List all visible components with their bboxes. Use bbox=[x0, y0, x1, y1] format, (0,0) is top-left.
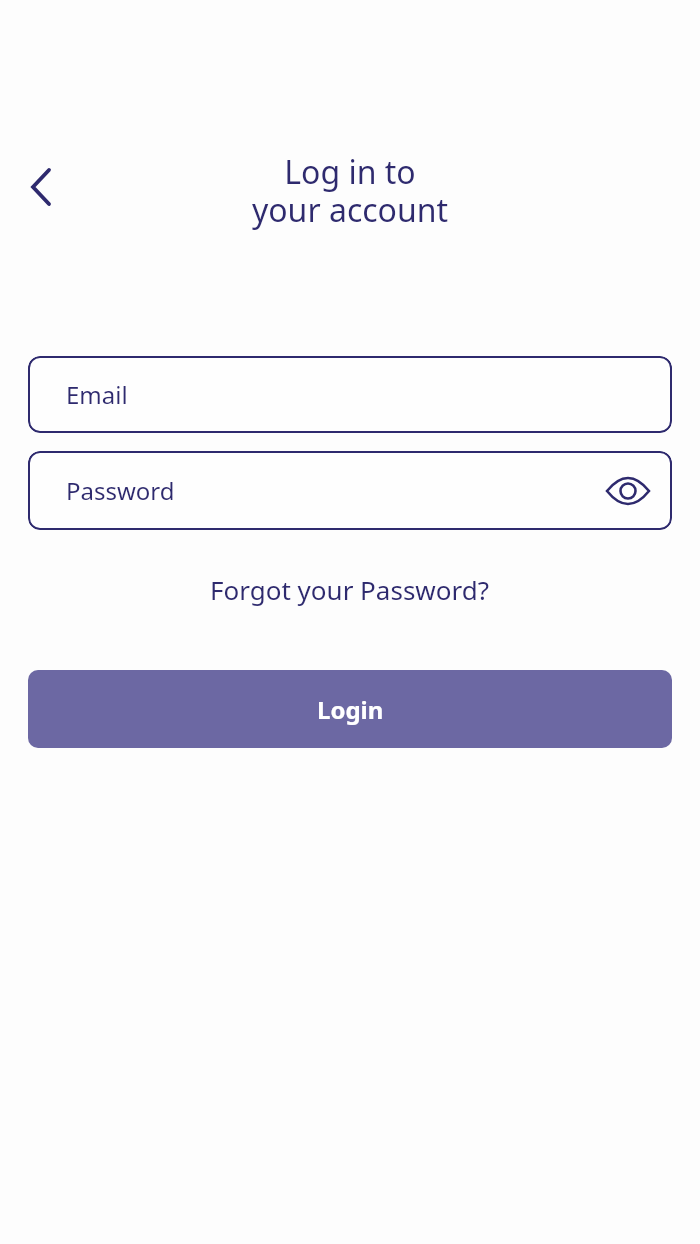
button[interactable]: Forgot your Password? bbox=[210, 572, 490, 607]
button[interactable]: Email bbox=[28, 356, 672, 433]
button[interactable]: Password bbox=[28, 451, 672, 530]
staticText: Password bbox=[66, 474, 175, 507]
staticText: Login bbox=[317, 693, 384, 726]
staticText: Log in to your account bbox=[0, 150, 700, 231]
button[interactable]: Login bbox=[28, 670, 672, 748]
staticText: Email bbox=[66, 378, 128, 411]
button[interactable] bbox=[17, 163, 65, 211]
